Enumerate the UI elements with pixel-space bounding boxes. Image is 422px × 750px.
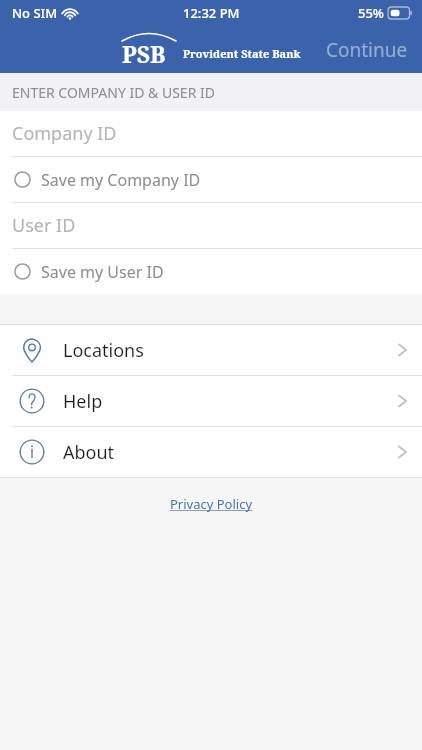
button[interactable]: Help (0, 376, 422, 426)
staticText: Company ID (12, 121, 117, 146)
button[interactable]: Save my Company ID (0, 157, 422, 202)
button[interactable]: About (0, 427, 422, 477)
staticText: Save my User ID (41, 261, 164, 283)
staticText: Locations (63, 338, 144, 363)
staticText: PSB (122, 38, 166, 69)
staticText: About (63, 440, 115, 465)
staticText: 55% (358, 4, 384, 22)
button[interactable]: Save my User ID (0, 249, 422, 294)
staticText: Help (63, 389, 103, 414)
other: About (19, 439, 45, 465)
button[interactable]: Privacy Policy (162, 492, 261, 516)
button[interactable]: Locations (0, 325, 422, 375)
button[interactable]: User ID (0, 203, 422, 248)
staticText: Continue (326, 37, 408, 63)
staticText: Save my Company ID (41, 169, 201, 191)
button[interactable]: Continue (312, 29, 422, 71)
staticText: User ID (12, 213, 76, 238)
staticText: No SIM (12, 4, 58, 22)
other: Locations (19, 337, 45, 363)
button[interactable]: Company ID (0, 111, 422, 156)
staticText: Privacy Policy (170, 495, 253, 513)
staticText: 12:32 PM (183, 4, 240, 22)
other: Help (19, 388, 45, 414)
staticText: Provident State Bank (183, 46, 301, 61)
staticText: ENTER COMPANY ID & USER ID (12, 83, 215, 102)
